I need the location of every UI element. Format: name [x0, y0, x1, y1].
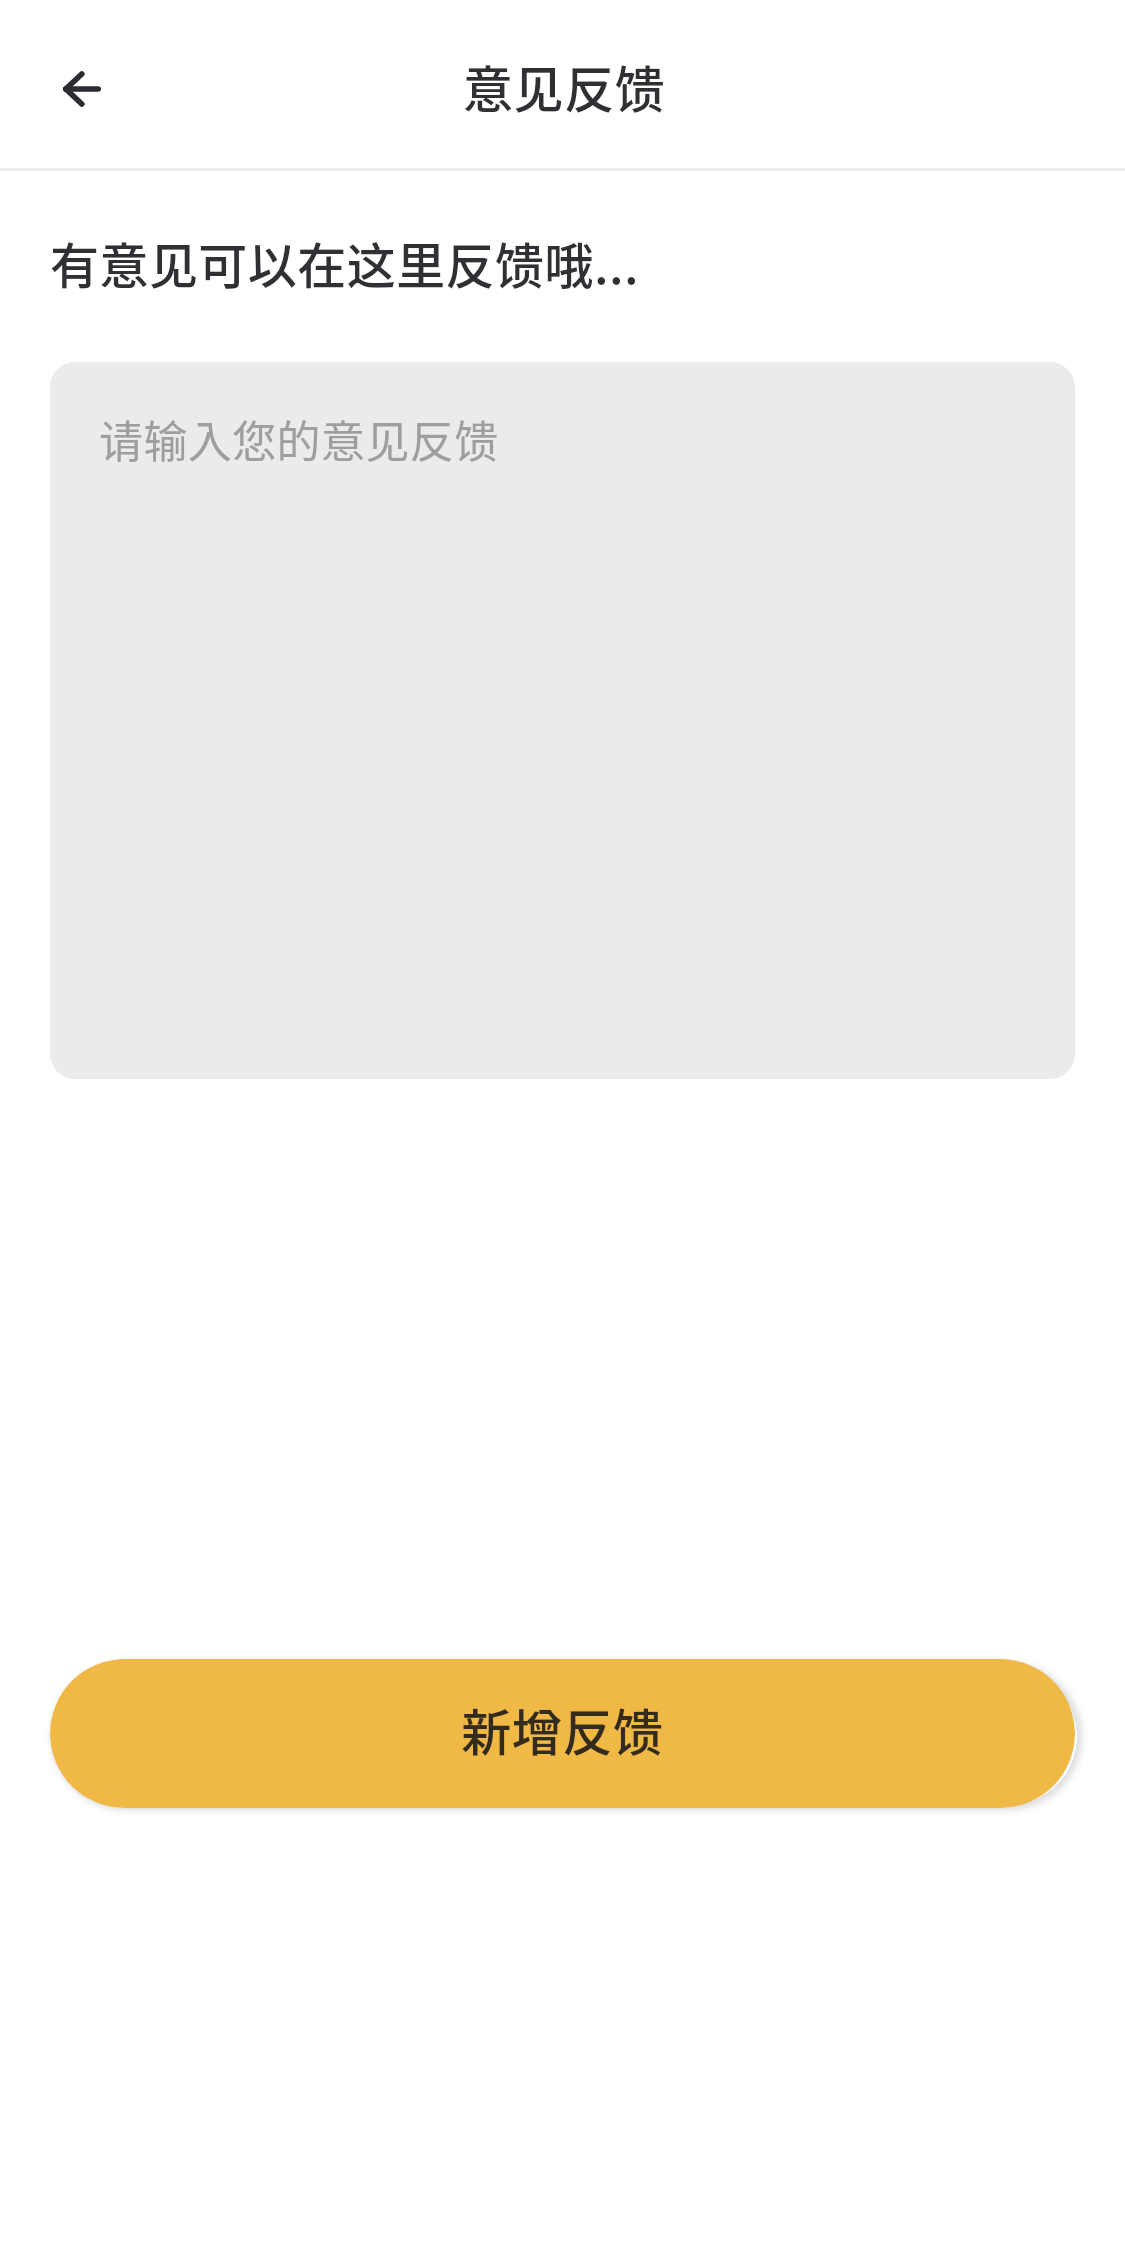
button[interactable]: Back [37, 44, 127, 134]
staticText: 有意见可以在这里反馈哦... [50, 227, 640, 298]
staticText: 意见反馈 [463, 50, 666, 122]
button[interactable]: 新增反馈 [50, 1659, 1075, 1808]
button[interactable]: 请输入您的意见反馈 [50, 362, 1075, 1079]
staticText: 新增反馈 [461, 1693, 664, 1765]
staticText: 请输入您的意见反馈 [99, 407, 499, 471]
